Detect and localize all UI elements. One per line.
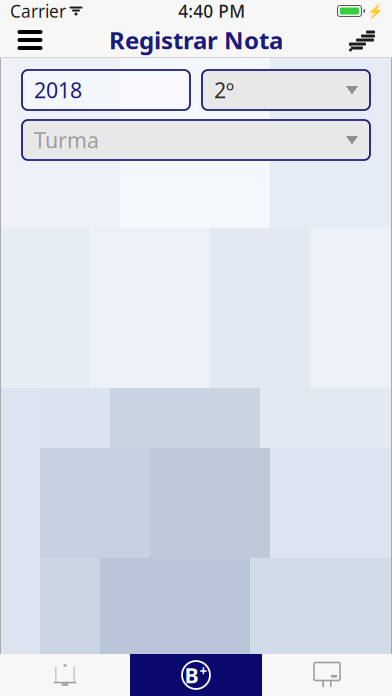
button[interactable]: Registrar Nota <box>130 654 262 696</box>
button[interactable]: Menu <box>8 22 52 58</box>
button[interactable]: Notificações <box>0 654 130 696</box>
staticText: Carrier <box>10 0 66 22</box>
button[interactable]: 2018 <box>22 70 190 110</box>
staticText: Registrar Nota <box>109 24 283 56</box>
staticText: Turma <box>34 126 99 154</box>
staticText: 2º <box>214 76 234 104</box>
staticText: ⚡ <box>367 3 384 19</box>
staticText: + <box>199 662 207 680</box>
staticText: 2018 <box>34 76 82 104</box>
staticText: B <box>184 661 198 689</box>
button[interactable]: Aulas <box>262 654 392 696</box>
staticText: 4:40 PM <box>178 0 245 22</box>
button[interactable]: Borracha <box>340 22 384 58</box>
button[interactable]: Turma <box>22 120 370 160</box>
button[interactable]: 2º <box>202 70 370 110</box>
